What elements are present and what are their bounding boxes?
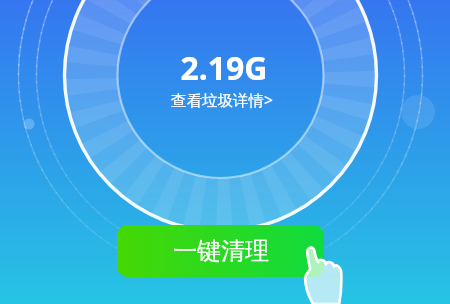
button[interactable]: 查看垃圾详情>: [171, 89, 273, 110]
staticText: 一键清理: [173, 236, 269, 266]
staticText: 2.19G: [180, 46, 268, 90]
other: Tap to clean: [0, 0, 450, 304]
staticText: 查看垃圾详情>: [171, 89, 273, 110]
button[interactable]: 一键清理: [117, 225, 324, 277]
